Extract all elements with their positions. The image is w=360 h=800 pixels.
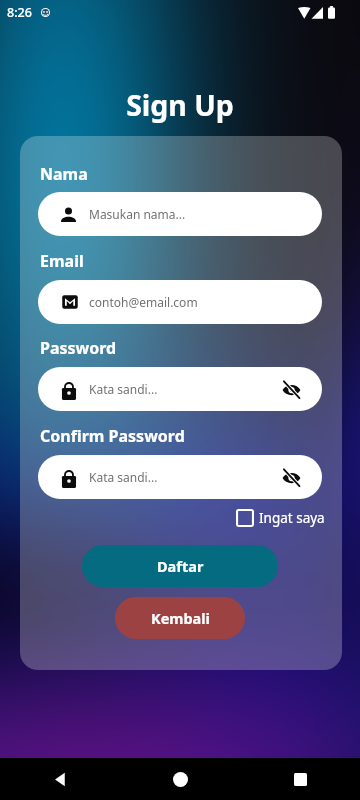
button[interactable]: Kembali bbox=[115, 597, 245, 639]
button[interactable]: Daftar bbox=[82, 545, 278, 587]
other: Home bbox=[173, 772, 188, 787]
staticText: Ingat saya bbox=[259, 509, 325, 527]
staticText: Sign Up bbox=[0, 86, 360, 125]
button[interactable]: Kata sandi... bbox=[38, 455, 322, 499]
staticText: Nama bbox=[40, 163, 88, 185]
other: Toggle password visibility bbox=[282, 380, 301, 399]
other: Recent apps bbox=[294, 773, 307, 786]
other: Back bbox=[52, 771, 69, 788]
staticText: Masukan nama... bbox=[89, 206, 186, 222]
staticText: 8:26 bbox=[7, 4, 32, 21]
staticText: Confirm Password bbox=[40, 425, 185, 447]
staticText: Kata sandi... bbox=[89, 469, 158, 485]
staticText: Kembali bbox=[151, 608, 210, 628]
staticText: Kata sandi... bbox=[89, 381, 158, 397]
button[interactable]: Recent apps bbox=[240, 758, 360, 800]
button[interactable]: Masukan nama... bbox=[38, 192, 322, 236]
button[interactable]: Home bbox=[120, 758, 240, 800]
staticText: Email bbox=[40, 250, 84, 272]
other: Toggle password visibility bbox=[282, 468, 301, 487]
staticText: Password bbox=[40, 337, 117, 359]
button[interactable]: contoh@email.com bbox=[38, 280, 322, 324]
staticText: Daftar bbox=[157, 556, 204, 576]
button[interactable]: Kata sandi... bbox=[38, 367, 322, 411]
button[interactable]: Back bbox=[0, 758, 120, 800]
button[interactable]: Ingat saya bbox=[236, 504, 325, 532]
staticText: contoh@email.com bbox=[89, 294, 198, 310]
